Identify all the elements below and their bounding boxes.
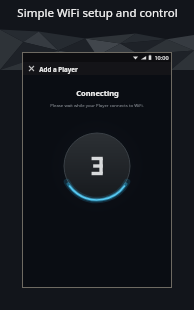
staticText: 10:00 [154,54,169,61]
staticText: Simple WiFi setup and control [17,5,178,21]
staticText: Please wait while your Player connects t… [50,102,144,108]
button[interactable]: Close [27,64,36,73]
staticText: Add a Player [39,65,78,73]
staticText: Connecting [76,88,119,98]
